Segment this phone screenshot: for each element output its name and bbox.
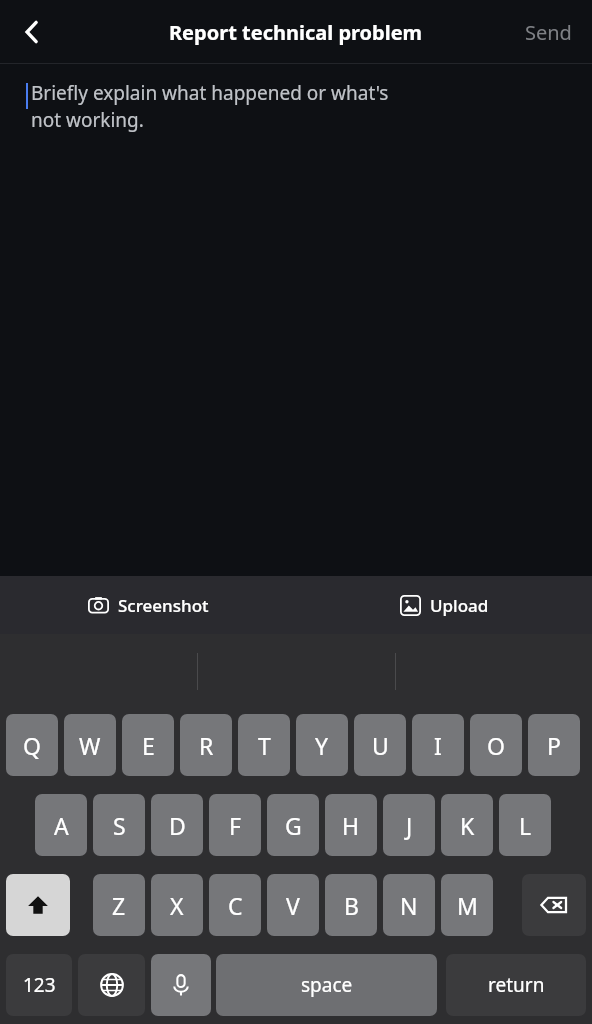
button[interactable]: Q <box>6 714 58 776</box>
staticText: Briefly explain what happened or what's … <box>31 80 389 133</box>
staticText: D <box>169 810 186 841</box>
staticText: H <box>342 810 360 841</box>
button[interactable]: R <box>180 714 232 776</box>
button[interactable]: Y <box>296 714 348 776</box>
staticText: space <box>301 972 353 998</box>
button[interactable]: V <box>267 874 319 936</box>
button[interactable]: Back <box>6 6 58 58</box>
staticText: O <box>487 730 505 761</box>
button[interactable]: Backspace <box>522 874 586 936</box>
staticText: K <box>460 810 475 841</box>
staticText: Y <box>315 730 329 761</box>
button[interactable]: 123 <box>6 954 72 1016</box>
button[interactable]: Shift <box>6 874 70 936</box>
button[interactable]: Screenshot <box>78 586 219 625</box>
button[interactable]: P <box>528 714 580 776</box>
button[interactable]: Briefly explain what happened or what's … <box>0 64 592 576</box>
staticText: V <box>286 890 300 921</box>
button[interactable]: B <box>325 874 377 936</box>
button[interactable]: Send <box>519 11 578 54</box>
button[interactable]: M <box>441 874 493 936</box>
button[interactable]: L <box>499 794 551 856</box>
staticText: Z <box>112 890 126 921</box>
button[interactable]: F <box>209 794 261 856</box>
staticText: F <box>229 810 241 841</box>
button[interactable]: space <box>216 954 437 1016</box>
staticText: G <box>285 810 302 841</box>
button[interactable]: E <box>122 714 174 776</box>
staticText: M <box>457 890 478 921</box>
staticText: return <box>488 972 545 998</box>
button[interactable]: return <box>446 954 586 1016</box>
button[interactable]: S <box>93 794 145 856</box>
button[interactable]: H <box>325 794 377 856</box>
staticText: X <box>170 890 184 921</box>
button[interactable]: I <box>412 714 464 776</box>
button[interactable]: U <box>354 714 406 776</box>
button[interactable]: N <box>383 874 435 936</box>
staticText: Screenshot <box>118 594 209 617</box>
staticText: T <box>258 730 271 761</box>
staticText: J <box>406 810 413 841</box>
button[interactable]: Upload <box>390 586 499 625</box>
staticText: P <box>547 730 561 761</box>
button[interactable]: G <box>267 794 319 856</box>
staticText: N <box>400 890 418 921</box>
button[interactable]: K <box>441 794 493 856</box>
staticText: Report technical problem <box>169 19 423 46</box>
staticText: C <box>228 890 243 921</box>
button[interactable]: O <box>470 714 522 776</box>
staticText: A <box>54 810 69 841</box>
staticText: Upload <box>430 594 489 617</box>
staticText: U <box>372 730 389 761</box>
button[interactable]: Voice input <box>151 954 211 1016</box>
button[interactable]: C <box>209 874 261 936</box>
button[interactable]: W <box>64 714 116 776</box>
button[interactable]: Z <box>93 874 145 936</box>
button[interactable]: Change keyboard <box>78 954 145 1016</box>
button[interactable]: A <box>35 794 87 856</box>
staticText: Q <box>23 730 41 761</box>
staticText: W <box>79 730 101 761</box>
staticText: S <box>113 810 126 841</box>
staticText: L <box>519 810 532 841</box>
button[interactable]: J <box>383 794 435 856</box>
staticText: R <box>199 730 214 761</box>
staticText: I <box>434 730 442 761</box>
button[interactable]: D <box>151 794 203 856</box>
staticText: B <box>344 890 359 921</box>
button[interactable]: T <box>238 714 290 776</box>
staticText: 123 <box>23 972 56 998</box>
button[interactable]: X <box>151 874 203 936</box>
staticText: E <box>142 730 155 761</box>
staticText: Send <box>525 19 572 46</box>
